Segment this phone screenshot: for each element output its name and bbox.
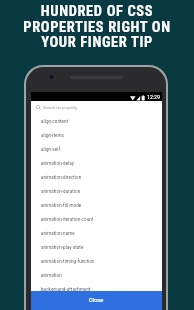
button[interactable]: align-content	[31, 114, 162, 128]
button[interactable]: animation-iteration-count	[31, 212, 162, 226]
other: Search	[36, 105, 41, 110]
staticText: HUNDRED OF CSS PROPERTIES RIGHT ON YOUR …	[0, 3, 194, 51]
staticText: 12:29	[147, 94, 160, 100]
staticText: animation-name	[41, 231, 75, 236]
button[interactable]: animation-play-state	[31, 240, 162, 254]
button[interactable]: animation-timing-function	[31, 254, 162, 268]
staticText: Close	[89, 297, 104, 304]
staticText: animation-duration	[41, 189, 81, 194]
staticText: align-items	[41, 133, 64, 138]
staticText: align-self	[41, 147, 61, 152]
button[interactable]: align-items	[31, 128, 162, 142]
staticText: animation-play-state	[41, 245, 84, 250]
button[interactable]: align-self	[31, 142, 162, 156]
staticText: background-attachment	[41, 287, 91, 292]
button[interactable]: Search	[31, 101, 162, 114]
button[interactable]: Close	[31, 291, 162, 310]
staticText: Search for property.	[43, 105, 79, 110]
button[interactable]: background-attachment	[31, 282, 162, 296]
button[interactable]: animation-name	[31, 226, 162, 240]
staticText: animation-fill-mode	[41, 203, 82, 208]
button[interactable]: animation	[31, 268, 162, 282]
staticText: animation-iteration-count	[41, 217, 94, 222]
button[interactable]: animation-fill-mode	[31, 198, 162, 212]
button[interactable]: animation-delay	[31, 156, 162, 170]
staticText: animation	[41, 273, 62, 278]
staticText: animation-timing-function	[41, 259, 95, 264]
staticText: animation-direction	[41, 175, 82, 180]
button[interactable]: animation-duration	[31, 184, 162, 198]
button[interactable]: animation-direction	[31, 170, 162, 184]
staticText: animation-delay	[41, 161, 75, 166]
staticText: align-content	[41, 119, 69, 124]
